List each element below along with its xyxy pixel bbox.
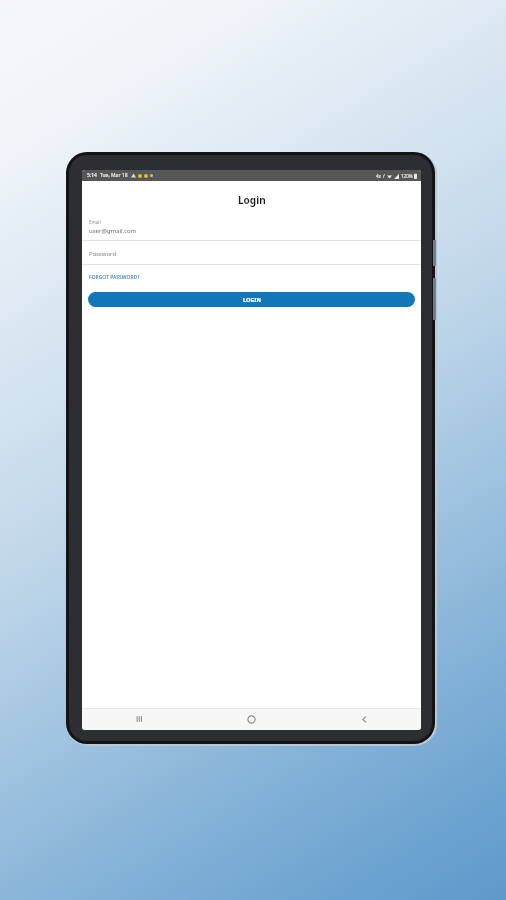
staticText: user@gmail.com [89,227,137,235]
button[interactable]: Back [308,715,421,724]
staticText: FORGOT PASSWORD? [89,274,140,281]
staticText: Tue, Mar 18 [100,172,128,179]
staticText: 120% [401,173,413,179]
staticText: / [383,173,385,179]
staticText: Email [89,219,101,225]
staticText: LOGIN [243,296,261,303]
button[interactable]: FORGOT PASSWORD? [89,273,140,282]
button[interactable]: Recent apps [82,715,195,723]
staticText: Password [89,250,117,258]
button[interactable]: Email [82,219,421,240]
button[interactable]: Home [195,715,308,724]
staticText: Login [238,193,266,207]
button[interactable]: Password [82,250,421,264]
button[interactable]: LOGIN [88,292,415,307]
staticText: 5:14 [87,172,97,179]
staticText: 4x [376,173,381,179]
